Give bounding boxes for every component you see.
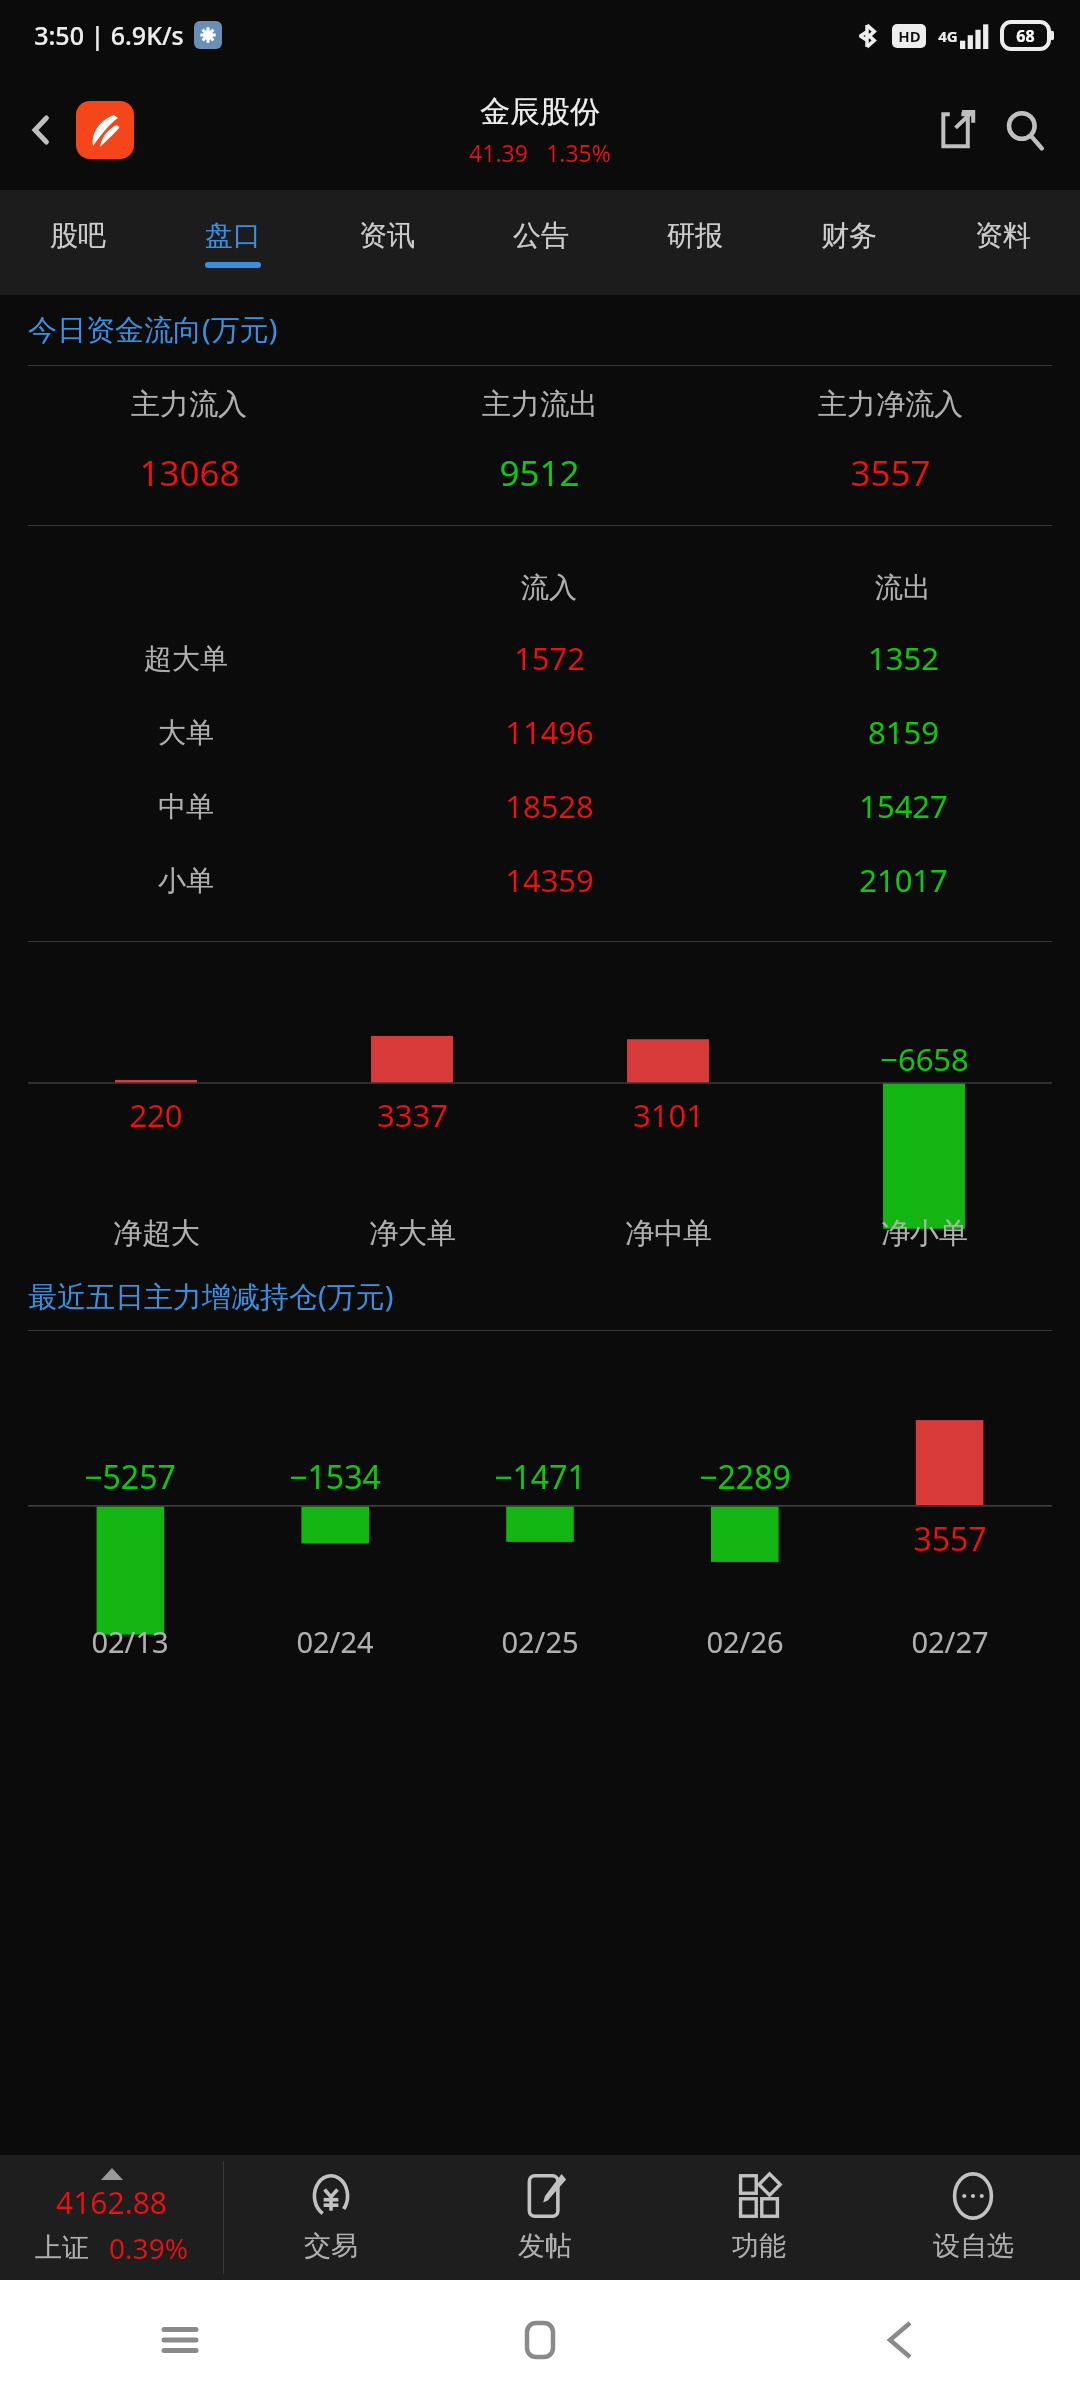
staticText: −2289 (699, 1455, 791, 1499)
button[interactable]: 小单 (0, 859, 1080, 901)
staticText: 流出 (875, 570, 931, 605)
staticText: −1534 (289, 1455, 381, 1499)
button[interactable]: 中单 (0, 785, 1080, 827)
staticText: 02/24 (296, 1622, 374, 1661)
staticText: 02/27 (911, 1622, 989, 1661)
button[interactable]: Back (14, 103, 68, 157)
staticText: 4G (938, 26, 958, 46)
staticText: 资讯 (359, 218, 415, 253)
staticText: 21017 (859, 859, 948, 901)
staticText: 主力净流入 (818, 386, 963, 423)
button[interactable]: 公告 (464, 190, 618, 295)
staticText: 3337 (377, 1094, 448, 1136)
staticText: 设自选 (933, 2229, 1014, 2263)
button[interactable]: 主力流入 (14, 386, 364, 497)
button[interactable]: 主力净流入 (715, 386, 1066, 497)
staticText: 18528 (505, 785, 594, 827)
staticText: 金辰股份 (480, 93, 600, 131)
staticText: 1.35% (546, 137, 611, 168)
staticText: 9512 (499, 449, 580, 497)
staticText: 220 (129, 1094, 183, 1136)
staticText: 02/26 (706, 1622, 784, 1661)
staticText: 公告 (513, 218, 569, 253)
staticText: 交易 (304, 2229, 358, 2263)
staticText: 41.39 (469, 137, 528, 168)
staticText: 超大单 (144, 641, 228, 676)
staticText: 8159 (868, 711, 939, 753)
button[interactable]: Search (996, 101, 1054, 159)
staticText: 净中单 (625, 1215, 712, 1252)
staticText: 今日资金流向(万元) (28, 309, 278, 349)
staticText: 4162.88 (56, 2182, 167, 2223)
staticText: −5257 (84, 1455, 176, 1499)
staticText: 3:50 | 6.9K/s (34, 18, 184, 52)
button[interactable]: 股吧 (0, 190, 155, 295)
button[interactable]: Back (870, 2310, 930, 2370)
button[interactable]: 主力流出 (364, 386, 715, 497)
staticText: 14359 (505, 859, 594, 901)
staticText: 主力流入 (131, 386, 247, 423)
staticText: 02/25 (501, 1622, 579, 1661)
staticText: 资料 (975, 218, 1031, 253)
staticText: 上证 (35, 2231, 89, 2265)
button[interactable]: 研报 (618, 190, 772, 295)
staticText: 15427 (859, 785, 948, 827)
staticText: 小单 (158, 863, 214, 898)
button[interactable]: 交易 (224, 2155, 438, 2280)
staticText: 大单 (158, 715, 214, 750)
staticText: 净大单 (369, 1215, 456, 1252)
staticText: 1572 (514, 637, 585, 679)
staticText: 3557 (913, 1517, 987, 1561)
button[interactable]: 大单 (0, 711, 1080, 753)
staticText: 主力流出 (482, 386, 598, 423)
button[interactable]: 资讯 (310, 190, 464, 295)
staticText: 11496 (505, 711, 594, 753)
staticText: 1352 (868, 637, 939, 679)
staticText: 3101 (633, 1094, 704, 1136)
button[interactable]: Recents (150, 2310, 210, 2370)
button[interactable]: 功能 (652, 2155, 866, 2280)
button[interactable]: App logo (76, 101, 134, 159)
staticText: 发帖 (518, 2229, 572, 2263)
button[interactable]: 4162.88 (0, 2155, 223, 2280)
staticText: 净小单 (881, 1215, 968, 1252)
staticText: 02/13 (91, 1622, 169, 1661)
staticText: 流入 (521, 570, 577, 605)
staticText: −1471 (494, 1455, 586, 1499)
staticText: HD (898, 26, 921, 46)
button[interactable]: 超大单 (0, 637, 1080, 679)
button[interactable]: 盘口 (155, 190, 310, 295)
button[interactable]: Share (928, 101, 986, 159)
staticText: 股吧 (50, 218, 106, 253)
staticText: 0.39% (109, 2229, 188, 2267)
staticText: 净超大 (113, 1215, 200, 1252)
staticText: 研报 (667, 218, 723, 253)
button[interactable]: 设自选 (866, 2155, 1080, 2280)
staticText: 财务 (821, 218, 877, 253)
button[interactable]: 财务 (772, 190, 926, 295)
staticText: 盘口 (205, 218, 261, 253)
button[interactable]: 资料 (926, 190, 1080, 295)
staticText: 13068 (139, 449, 240, 497)
staticText: 最近五日主力增减持仓(万元) (28, 1276, 394, 1316)
staticText: −6658 (880, 1038, 969, 1080)
staticText: 功能 (732, 2229, 786, 2263)
button[interactable]: 发帖 (438, 2155, 652, 2280)
staticText: 68 (1016, 25, 1035, 47)
button[interactable]: Home (510, 2310, 570, 2370)
staticText: 3557 (850, 449, 931, 497)
staticText: 中单 (158, 789, 214, 824)
